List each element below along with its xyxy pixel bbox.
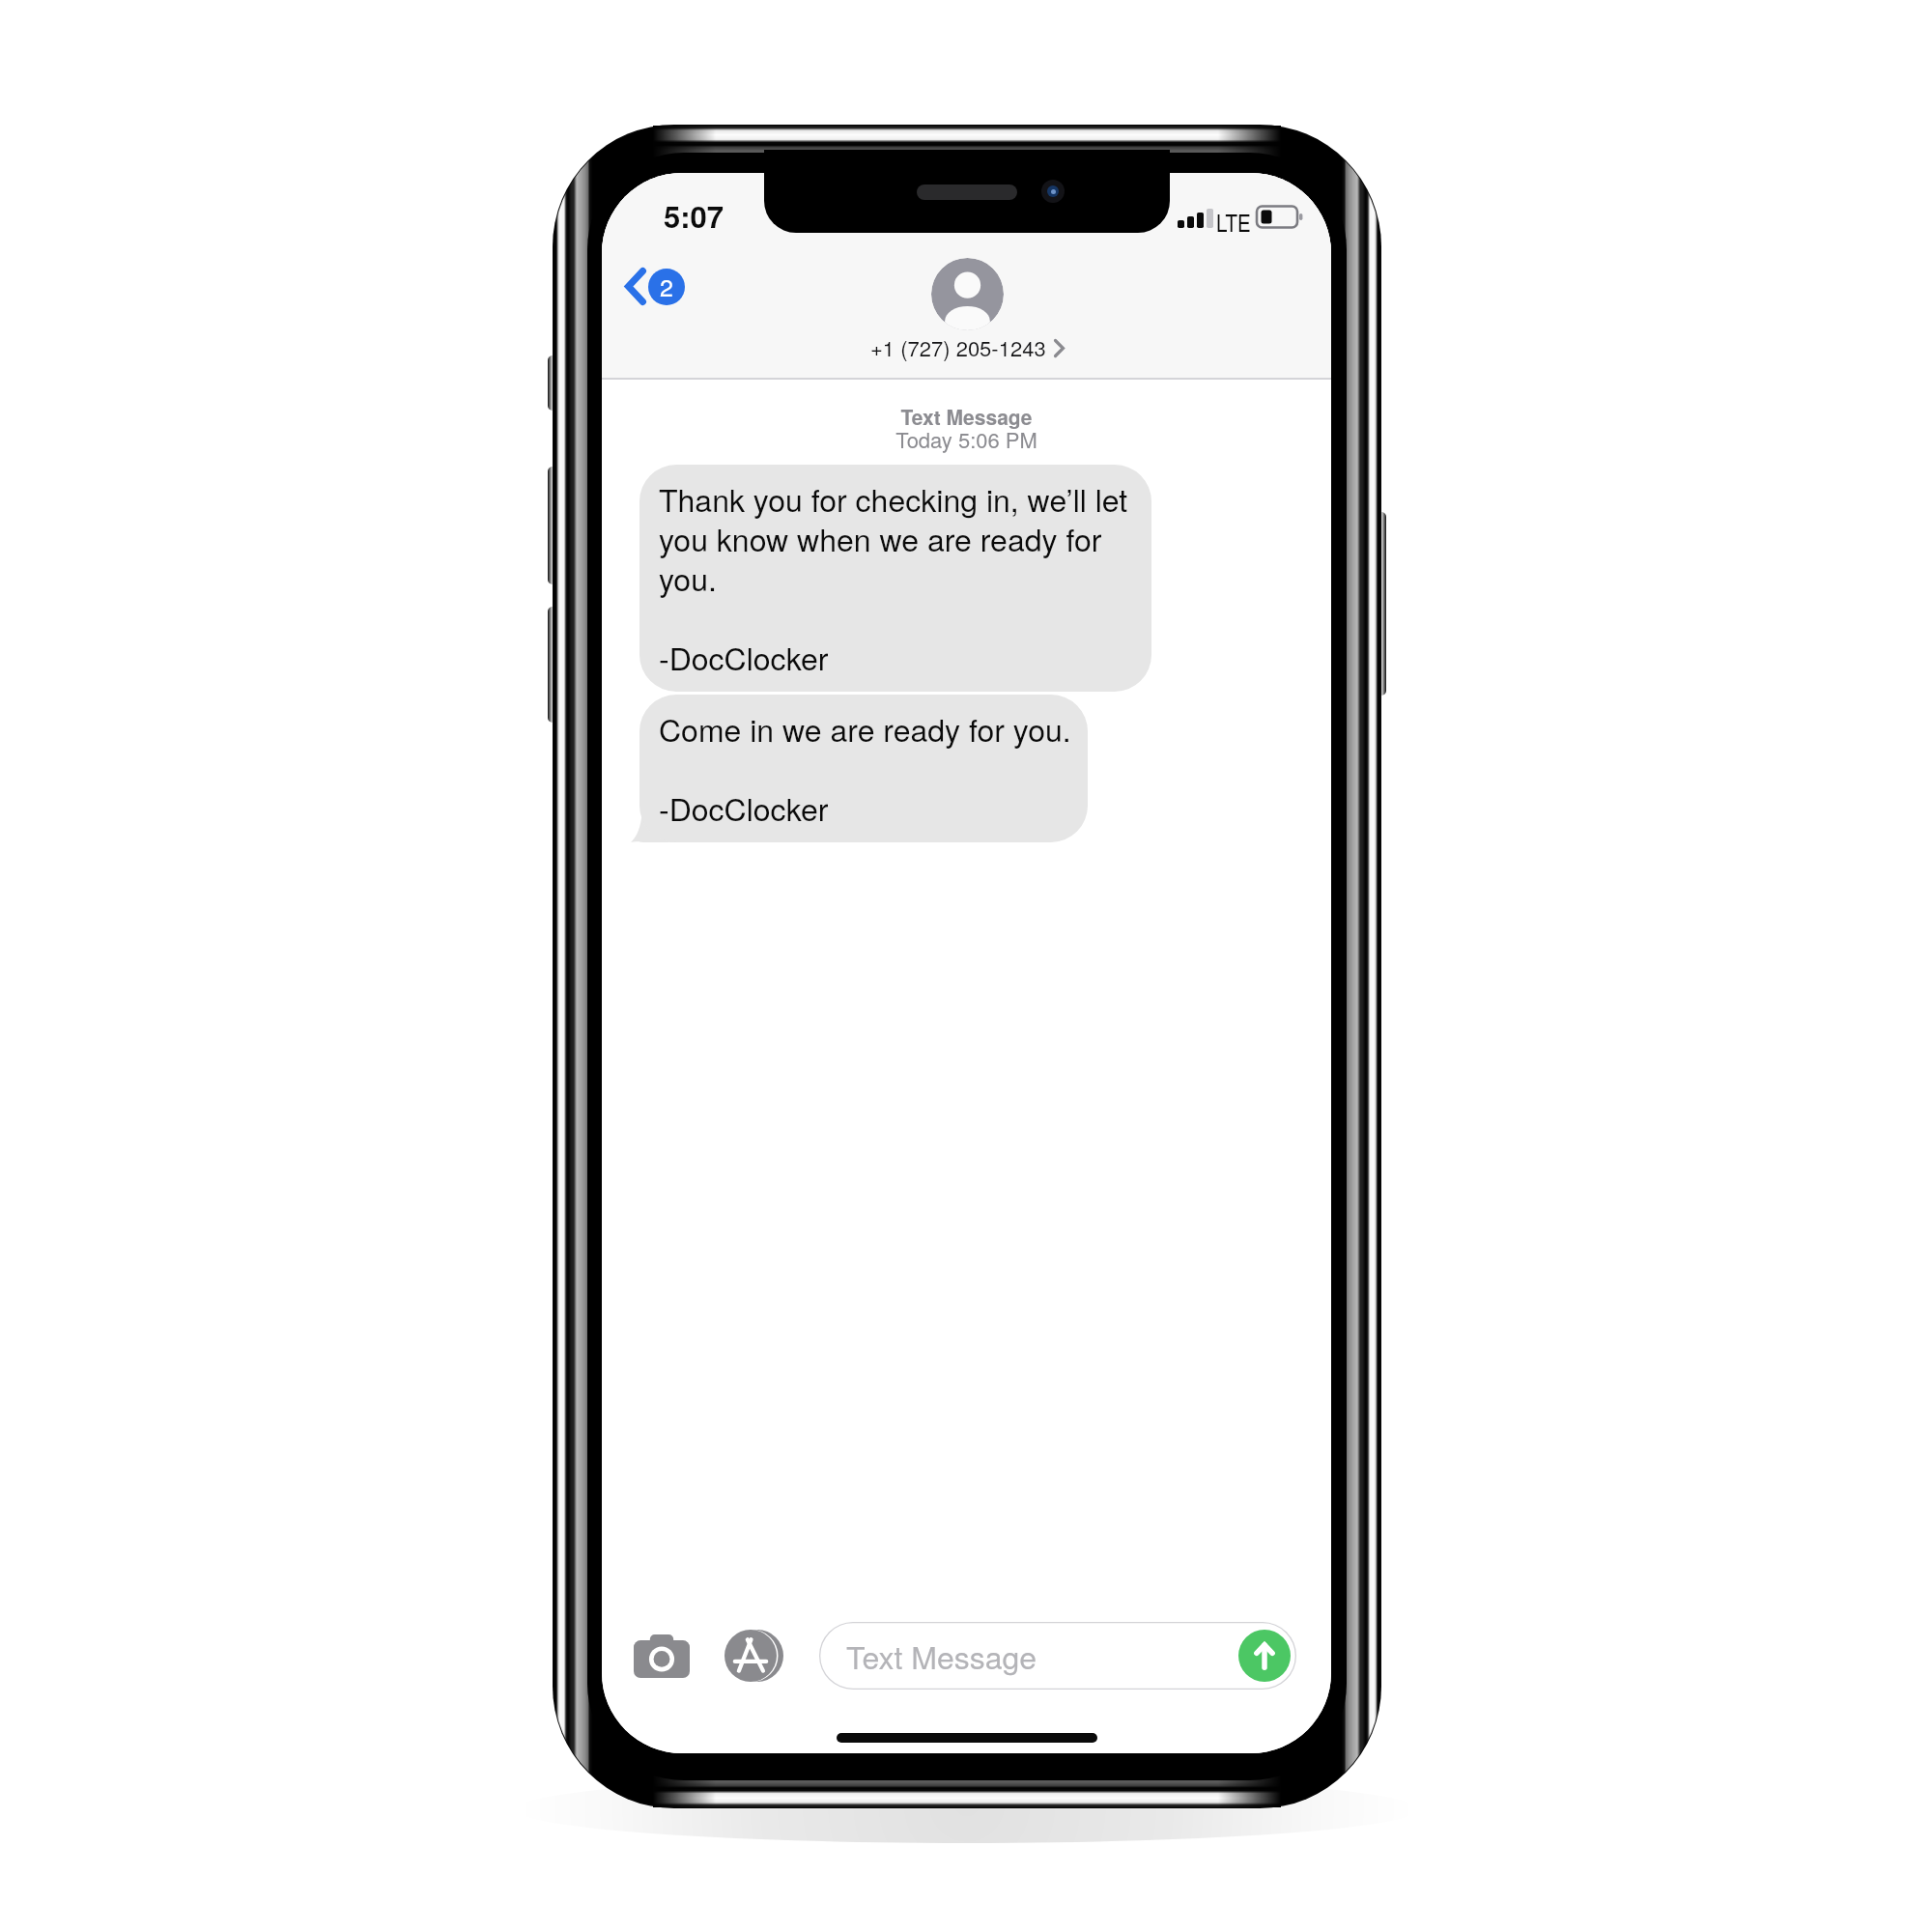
staticText: Text Message	[846, 1634, 1037, 1678]
button[interactable]: Thank you for checking in, we’ll let you…	[639, 465, 1151, 692]
button[interactable]: Back to 2 conversations	[612, 258, 695, 315]
button[interactable]: Take photo	[627, 1621, 696, 1690]
staticText: Today 5:06 PM	[602, 424, 1331, 455]
staticText: Thank you for checking in, we’ll let you…	[659, 476, 1135, 679]
button[interactable]: Come in we are ready for you. -DocClocke…	[639, 695, 1088, 842]
staticText: Come in we are ready for you. -DocClocke…	[659, 706, 1071, 830]
staticText: LTE	[1216, 206, 1251, 233]
staticText: Text Message	[602, 402, 1331, 431]
button[interactable]: +1 (727) 205-1243	[870, 332, 1065, 363]
button[interactable]: Text Message	[819, 1622, 1296, 1690]
button[interactable]: App Store	[723, 1625, 784, 1687]
staticText: 5:07	[664, 194, 724, 237]
button[interactable]: Send	[1238, 1630, 1291, 1682]
staticText: 2	[660, 269, 673, 303]
staticText: +1 (727) 205-1243	[870, 332, 1046, 363]
